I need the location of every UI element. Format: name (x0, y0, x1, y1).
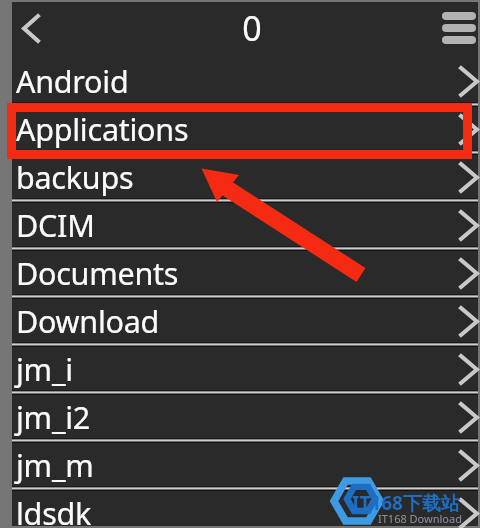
button[interactable]: Android (12, 57, 478, 105)
button[interactable]: Applications (12, 105, 478, 153)
button[interactable]: jm_m (12, 441, 478, 489)
staticText: jm_m (16, 444, 94, 486)
button[interactable]: Documents (12, 249, 478, 297)
staticText: IT168 Download (378, 511, 462, 526)
staticText: Android (16, 60, 129, 102)
staticText: backups (16, 156, 134, 198)
button[interactable]: ldsdk (12, 489, 478, 528)
staticText: ldsdk (16, 492, 92, 528)
staticText: jm_i2 (16, 396, 90, 438)
staticText: jm_i (16, 348, 73, 390)
button[interactable]: jm_i2 (12, 393, 478, 441)
button[interactable]: Download (12, 297, 478, 345)
staticText: Download (16, 300, 160, 342)
button[interactable]: backups (12, 153, 478, 201)
staticText: Applications (16, 108, 189, 150)
staticText: IT168下载站 (352, 490, 460, 516)
staticText: DCIM (16, 204, 95, 246)
button[interactable]: Menu (430, 4, 476, 52)
button[interactable]: DCIM (12, 201, 478, 249)
staticText: Documents (16, 252, 179, 294)
staticText: 0 (242, 5, 262, 51)
button[interactable]: Back (11, 4, 51, 52)
button[interactable]: jm_i (12, 345, 478, 393)
